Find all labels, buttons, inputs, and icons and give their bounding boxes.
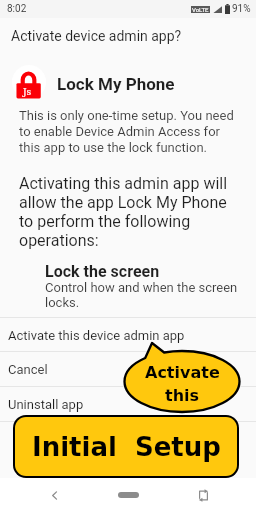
- staticText: Activate this device admin app: [8, 328, 185, 343]
- button[interactable]: Activate this device admin app: [0, 318, 256, 352]
- button[interactable]: Rotate screen: [182, 478, 224, 512]
- staticText: Activating this admin app will allow the…: [19, 174, 241, 250]
- staticText: Activate: [145, 363, 220, 382]
- staticText: Lock My Phone: [57, 74, 175, 94]
- staticText: Cancel: [8, 362, 48, 377]
- staticText: Js: [23, 87, 32, 97]
- staticText: VoLTE: [192, 6, 209, 13]
- staticText: 8:02: [7, 3, 27, 15]
- button[interactable]: Home: [107, 478, 149, 512]
- button[interactable]: Initial Setup: [15, 417, 237, 476]
- staticText: Initial Setup: [32, 432, 221, 462]
- staticText: this: [165, 386, 200, 405]
- staticText: Activate device admin app?: [11, 28, 182, 44]
- button[interactable]: Uninstall app: [0, 387, 256, 421]
- staticText: Lock the screen: [45, 262, 160, 281]
- staticText: 91%: [232, 3, 251, 15]
- button[interactable]: Activate this: [123, 337, 241, 413]
- button[interactable]: Cancel: [0, 352, 256, 386]
- staticText: This is only one-time setup. You need to…: [19, 108, 239, 155]
- staticText: Control how and when the screen locks.: [45, 280, 245, 310]
- button[interactable]: Back: [33, 478, 75, 512]
- staticText: Uninstall app: [8, 397, 84, 412]
